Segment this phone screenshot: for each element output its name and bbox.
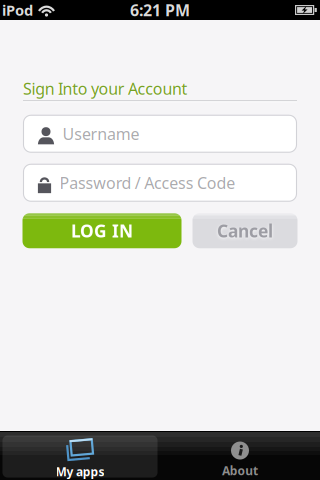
staticText: About xyxy=(222,462,258,478)
button[interactable]: My apps xyxy=(0,431,160,480)
staticText: Sign Into your Account xyxy=(23,78,188,99)
staticText: My apps xyxy=(56,463,104,479)
staticText: 6:21 PM xyxy=(130,0,190,21)
staticText: Username xyxy=(62,123,139,144)
button[interactable]: Username xyxy=(23,115,296,152)
staticText: LOG IN xyxy=(71,219,133,242)
button[interactable]: About xyxy=(160,431,320,480)
staticText: Password / Access Code xyxy=(59,172,235,193)
staticText: Cancel xyxy=(217,219,273,242)
button[interactable]: Password / Access Code xyxy=(23,164,296,201)
button[interactable]: Cancel xyxy=(192,213,297,248)
staticText: iPod xyxy=(2,0,33,20)
button[interactable]: LOG IN xyxy=(22,213,181,248)
